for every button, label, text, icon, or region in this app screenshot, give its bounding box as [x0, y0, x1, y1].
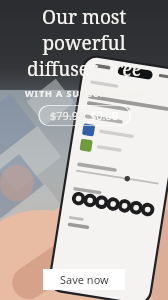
staticText: diffuser– [27, 56, 108, 82]
staticText: Our most powerful [0, 4, 168, 56]
staticText: $0.00 [90, 108, 119, 123]
button[interactable]: $79.99 [38, 105, 131, 126]
staticText: Save now [60, 272, 109, 287]
staticText: $79.99 [50, 108, 85, 123]
staticText: WITH A SUBSCRIPTION [25, 87, 144, 99]
staticText: free [108, 56, 142, 82]
button[interactable]: Save now [43, 269, 125, 290]
